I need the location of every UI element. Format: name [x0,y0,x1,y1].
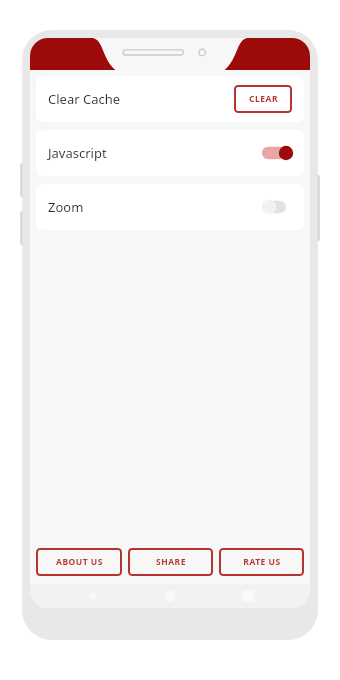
staticText: SHARE [156,556,186,568]
staticText: Zoom [48,198,84,216]
button[interactable]: Javascript [36,130,304,176]
button[interactable]: ABOUT US [36,548,122,576]
button[interactable]: SHARE [128,548,213,576]
staticText: RATE US [243,556,281,568]
staticText: Javascript [48,144,107,162]
button[interactable]: Zoom off [262,197,292,217]
button[interactable]: CLEAR [234,85,292,113]
button[interactable]: RATE US [219,548,304,576]
button[interactable]: Clear Cache [36,76,304,122]
button[interactable]: Javascript on [262,143,292,163]
staticText: ABOUT US [56,556,103,568]
staticText: Clear Cache [48,90,121,108]
staticText: CLEAR [249,93,278,105]
button[interactable]: Zoom [36,184,304,230]
